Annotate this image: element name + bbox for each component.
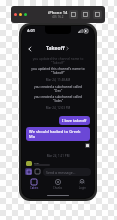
staticText: iOS 16.2: [52, 15, 64, 19]
button[interactable]: Login: [70, 177, 94, 190]
staticText: you updated this channel's name to "Take…: [31, 67, 85, 75]
staticText: Send a message...: [46, 170, 76, 175]
staticText: We should hacked to Greek Mo: [29, 129, 87, 139]
staticText: Cabins: [30, 186, 39, 190]
staticText: Login: [79, 186, 86, 190]
button[interactable]: Photo: [34, 168, 41, 175]
staticText: Takeoff: [46, 45, 65, 52]
button[interactable]: I love takeoff: [59, 116, 90, 125]
button[interactable]: Cabins: [22, 177, 46, 190]
staticText: I love takeoff: [62, 118, 87, 123]
staticText: Mar 24, 12:03 PM: [26, 106, 90, 110]
staticText: you updated the channel name to "Takeoff…: [31, 57, 85, 65]
button[interactable]: We should hacked to Greek Mo: [26, 127, 90, 141]
staticText: Chunks: [53, 186, 63, 190]
button[interactable]: Home: [69, 10, 78, 19]
staticText: iPhone 14: [48, 10, 68, 15]
button[interactable]: Chunks: [46, 177, 70, 190]
button[interactable]: Takeoff: [46, 45, 69, 52]
button[interactable]: Attach: [25, 168, 32, 175]
button[interactable]: Back: [25, 44, 34, 53]
staticText: 4:01: [27, 28, 35, 33]
staticText: Mar 24, 11:48 AM: [26, 78, 90, 82]
staticText: you created a subchannel called "Dev": [31, 85, 85, 93]
staticText: you created a subchannel called "Sales": [31, 95, 85, 103]
staticText: Mar 24, 1:21 PM: [26, 154, 90, 158]
button[interactable]: Settings: [81, 10, 90, 19]
button[interactable]: Screenshot: [93, 10, 102, 19]
button[interactable]: Reaction: [85, 143, 90, 148]
staticText: chat: [34, 161, 40, 164]
button[interactable]: Send a message...: [43, 168, 91, 176]
